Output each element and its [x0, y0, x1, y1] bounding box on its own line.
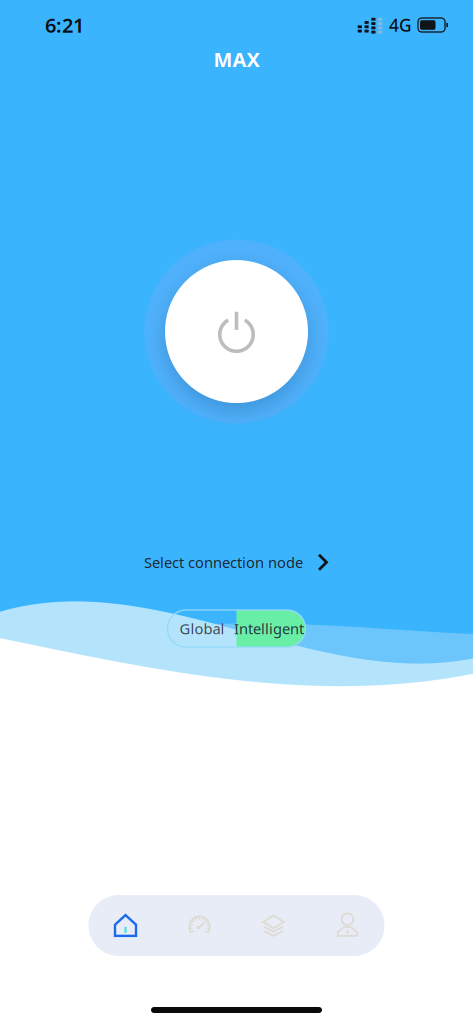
staticText: Intelligent	[234, 619, 304, 638]
button[interactable]: Account	[310, 912, 384, 938]
staticText: Global	[179, 619, 224, 638]
button[interactable]: Services	[236, 912, 310, 938]
button[interactable]: Home	[88, 912, 162, 938]
button[interactable]: Global	[167, 610, 236, 647]
button[interactable]: Intelligent	[236, 610, 305, 647]
button[interactable]: Power	[144, 240, 328, 424]
button[interactable]: Select connection node	[132, 546, 341, 579]
staticText: 6:21	[45, 12, 84, 38]
button[interactable]: Speed test	[162, 912, 236, 938]
staticText: 4G	[389, 13, 412, 36]
staticText: Select connection node	[144, 553, 303, 572]
staticText: MAX	[213, 46, 259, 73]
